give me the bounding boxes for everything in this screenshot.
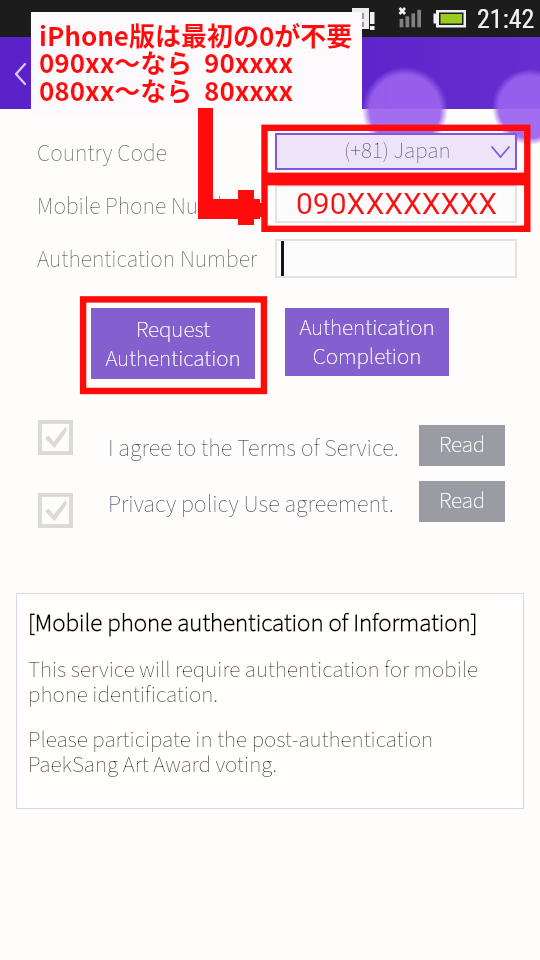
button[interactable]: Read — [419, 425, 505, 466]
button[interactable] — [275, 239, 517, 278]
staticText: Privacy policy Use agreement. — [108, 487, 394, 521]
button[interactable]: Read — [419, 481, 505, 522]
staticText: 21:42 — [477, 4, 535, 34]
staticText: Read — [439, 484, 486, 517]
staticText: Request Authentication — [105, 313, 241, 375]
staticText: 090xx〜なら 90xxxx — [39, 43, 294, 81]
button[interactable]: Agree checkbox — [38, 420, 73, 455]
staticText: Read — [439, 428, 486, 461]
staticText: iPhone版は最初の0が不要 — [39, 16, 353, 54]
button[interactable]: Authentication Completion — [285, 308, 449, 376]
staticText: Mobile Phone Number — [37, 190, 249, 223]
staticText: Authentication Completion — [299, 311, 435, 373]
button[interactable]: Agree checkbox — [38, 493, 73, 528]
staticText: 080xx〜なら 80xxxx — [39, 71, 294, 109]
button[interactable]: (+81) Japan — [275, 133, 517, 170]
staticText: Country Code — [37, 137, 167, 170]
button[interactable]: Back — [0, 37, 44, 109]
staticText: phone identification. — [28, 678, 219, 711]
staticText: This service will require authentication… — [28, 653, 479, 686]
button[interactable]: Request Authentication — [91, 308, 255, 379]
staticText: Authentication Number — [37, 243, 258, 276]
staticText: [Mobile phone authentication of Informat… — [28, 605, 478, 641]
staticText: 090XXXXXXXX — [296, 186, 498, 221]
button[interactable]: 090XXXXXXXX — [275, 185, 517, 223]
staticText: Please participate in the post-authentic… — [28, 723, 434, 756]
staticText: PaekSang Art Award voting. — [28, 748, 278, 781]
staticText: (+81) Japan — [344, 134, 451, 167]
staticText: I agree to the Terms of Service. — [108, 431, 399, 465]
